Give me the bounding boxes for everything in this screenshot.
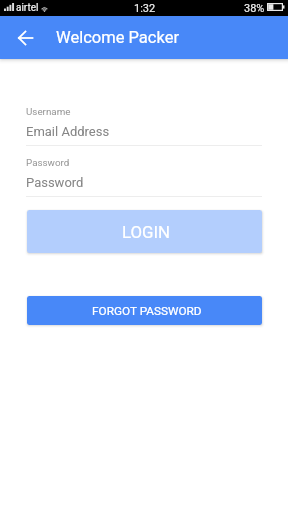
button[interactable]: Back <box>4 16 47 59</box>
staticText: 38% <box>244 2 265 15</box>
staticText: 1:32 <box>134 2 156 15</box>
staticText: Password <box>26 175 84 190</box>
button[interactable]: FORGOT PASSWORD <box>27 296 262 325</box>
staticText: Welcome Packer <box>56 28 179 47</box>
staticText: Email Address <box>26 124 110 139</box>
staticText: Username <box>26 106 71 117</box>
staticText: LOGIN <box>122 222 171 242</box>
staticText: FORGOT PASSWORD <box>92 304 202 318</box>
staticText: Password <box>26 157 70 168</box>
button[interactable]: LOGIN <box>27 210 262 253</box>
staticText: airtel <box>16 2 39 14</box>
